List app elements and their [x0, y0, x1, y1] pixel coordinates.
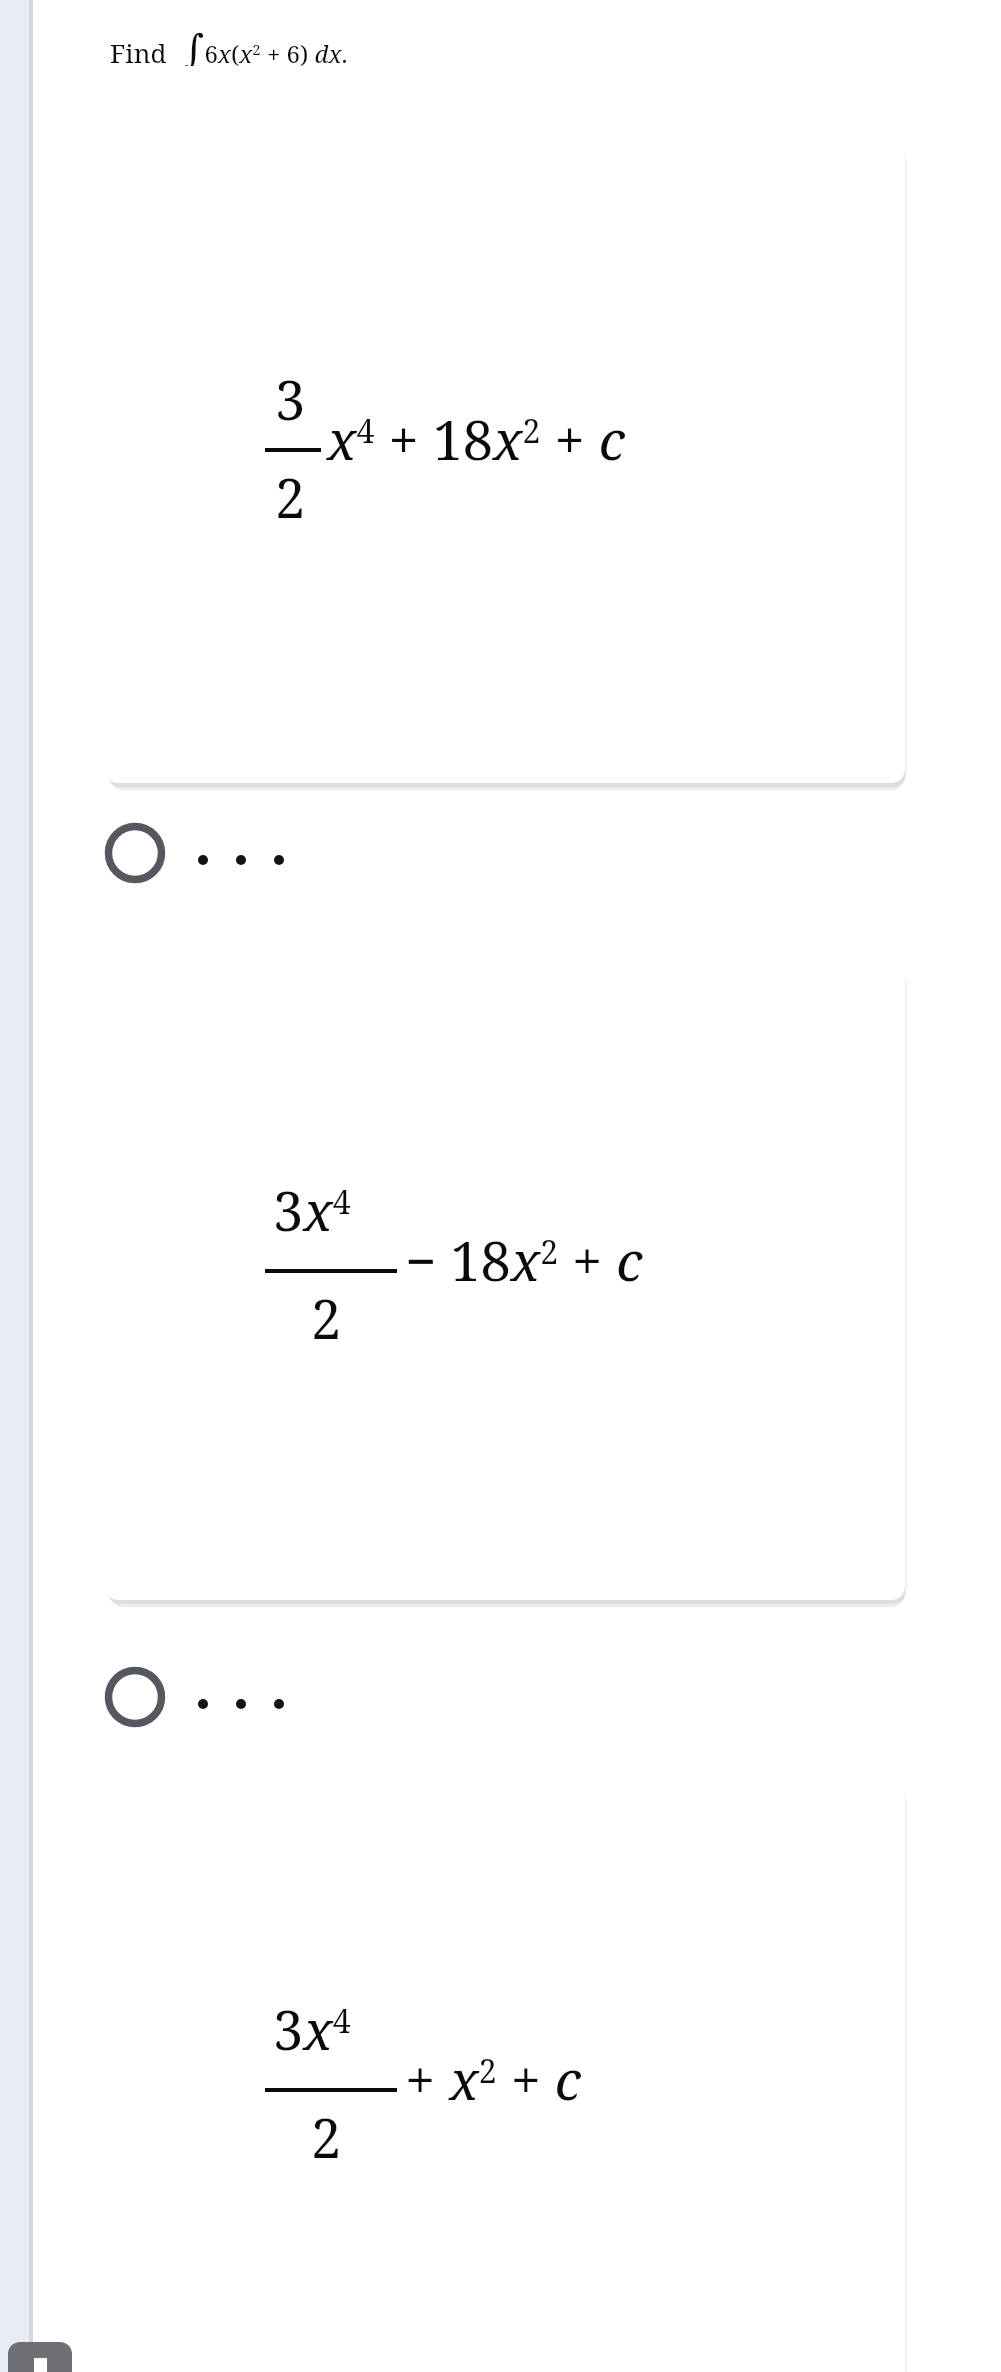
staticText: 3x4	[273, 1992, 351, 2066]
staticText: x4 + 18x2 + c	[327, 402, 625, 476]
button[interactable]: 3x4	[105, 1787, 905, 2372]
staticText: 2	[311, 2100, 342, 2174]
staticText: + x2 + c	[405, 2042, 582, 2116]
staticText: Find ∫6x(x2 + 6) dx.	[110, 20, 348, 66]
button[interactable]: 3x4	[105, 968, 905, 1600]
staticText: 2	[275, 460, 306, 534]
staticText: 3x4	[273, 1173, 351, 1247]
button[interactable]: 3	[105, 147, 905, 783]
staticText: − 18x2 + c	[405, 1223, 643, 1297]
button[interactable]: Option 1	[90, 807, 330, 899]
staticText: 3	[275, 362, 306, 436]
button[interactable]: Option 2	[90, 1651, 330, 1743]
button[interactable]: Navigation handle	[8, 2342, 72, 2372]
staticText: 2	[311, 1281, 342, 1355]
